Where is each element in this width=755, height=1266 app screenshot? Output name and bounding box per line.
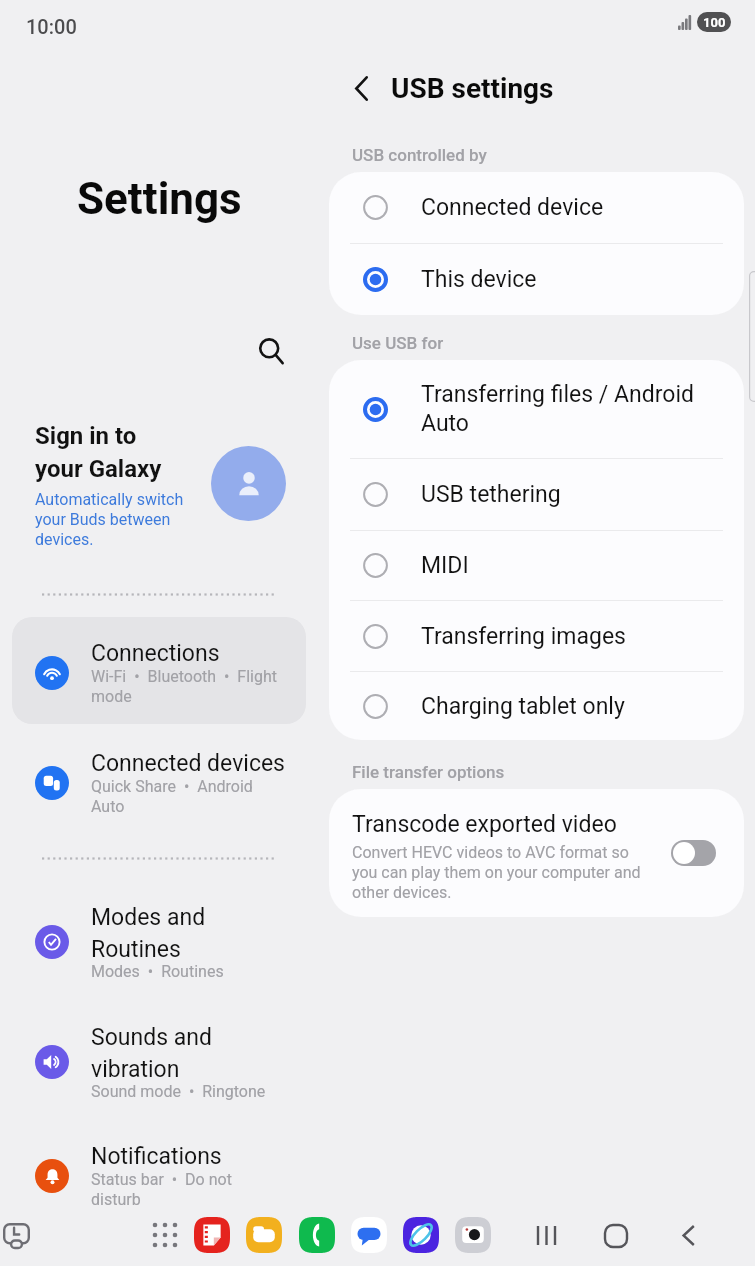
staticText: 100 [703,15,726,30]
button[interactable] [12,617,306,724]
staticText: Transferring files / Android Auto [421,381,694,437]
button[interactable]: Camera [455,1217,491,1253]
staticText: USB controlled by [352,145,487,165]
button[interactable]: Transcode exported video [329,789,744,917]
staticText: Charging tablet only [421,693,625,720]
button[interactable]: Transferring images [329,601,744,671]
button[interactable]: This device [329,244,744,315]
button[interactable]: Back [666,1213,711,1258]
staticText: Convert HEVC videos to AVC format so you… [352,843,641,902]
button[interactable]: Messages [351,1217,387,1253]
button[interactable]: Home [593,1213,638,1258]
staticText: Sounds and vibration [91,1024,212,1082]
button[interactable]: MIDI [329,531,744,600]
button[interactable]: Samsung Notes [194,1217,230,1253]
button[interactable] [12,1121,306,1227]
staticText: Modes and Routines [91,904,206,962]
staticText: Sign in to your Galaxy [35,422,162,483]
button[interactable]: Recents [524,1213,569,1258]
button[interactable]: Phone [299,1217,335,1253]
staticText: USB tethering [421,481,561,508]
button[interactable] [12,887,306,993]
staticText: Modes • Routines [91,962,224,981]
button[interactable]: Transcode exported video [671,840,716,866]
button[interactable]: Internet [403,1217,439,1253]
staticText: Status bar • Do not disturb [91,1170,232,1209]
button[interactable] [12,1007,306,1113]
button[interactable]: Sign in to your Galaxy [211,446,286,521]
staticText: USB settings [391,72,554,105]
staticText: Sound mode • Ringtone [91,1082,266,1101]
button[interactable]: Task switcher [3,1222,30,1249]
staticText: Automatically switch your Buds between d… [35,490,184,549]
staticText: Notifications [91,1143,222,1170]
staticText: File transfer options [352,762,505,782]
staticText: Settings [77,173,242,225]
button[interactable] [12,728,306,834]
staticText: Wi-Fi • Bluetooth • Flight mode [91,667,277,706]
staticText: This device [421,266,537,293]
staticText: Connected device [421,194,604,221]
button[interactable]: My Files [246,1217,282,1253]
staticText: Transcode exported video [352,811,617,838]
staticText: Transferring images [421,623,626,650]
button[interactable]: Transferring files / Android Auto [329,360,744,458]
button[interactable]: All apps [146,1216,184,1254]
button[interactable]: Search [252,332,292,372]
staticText: Quick Share • Android Auto [91,777,253,816]
button[interactable]: Connected device [329,172,744,243]
staticText: Use USB for [352,333,444,353]
staticText: MIDI [421,552,469,579]
button[interactable]: Charging tablet only [329,672,744,740]
staticText: Connected devices [91,750,285,777]
button[interactable]: Back [338,66,384,111]
staticText: 10:00 [26,15,77,38]
button[interactable]: USB tethering [329,459,744,530]
staticText: Connections [91,640,220,667]
